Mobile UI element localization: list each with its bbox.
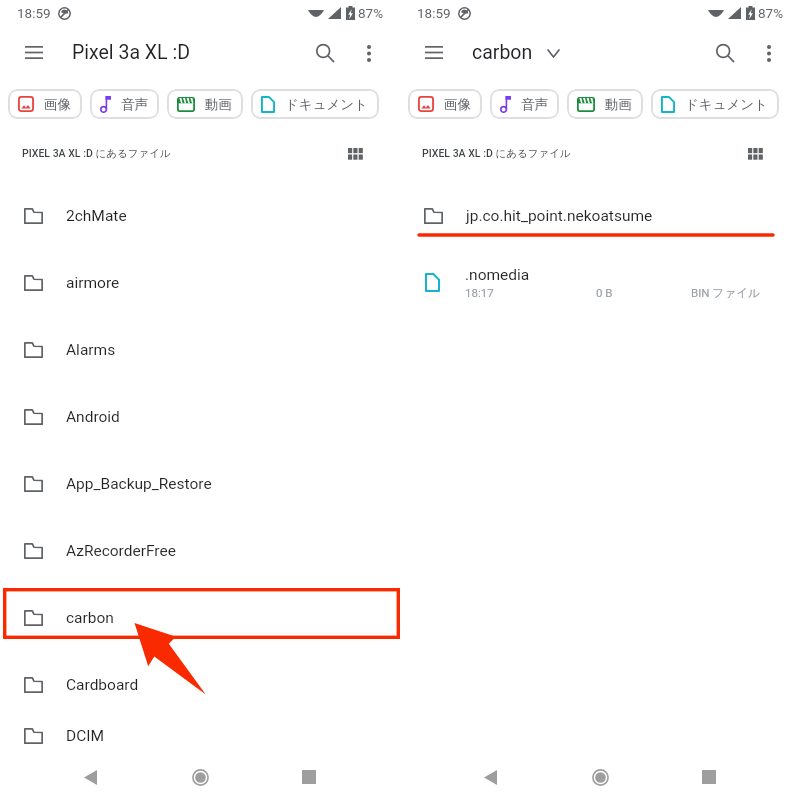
- staticText: 0 B: [596, 286, 613, 299]
- button[interactable]: Home: [176, 754, 224, 800]
- staticText: ドキュメント: [285, 96, 368, 113]
- staticText: 画像: [444, 96, 471, 113]
- button[interactable]: AzRecorderFree: [0, 517, 400, 584]
- button[interactable]: 2chMate: [0, 182, 400, 249]
- staticText: 18:59: [417, 5, 451, 21]
- button[interactable]: .nomedia: [400, 249, 800, 316]
- button[interactable]: More options: [747, 31, 791, 75]
- staticText: 音声: [121, 96, 148, 113]
- button[interactable]: Search: [303, 31, 347, 75]
- button[interactable]: 音声: [90, 89, 159, 119]
- button[interactable]: Open navigation drawer: [10, 29, 57, 76]
- staticText: Pixel 3a XL :D: [72, 41, 190, 64]
- staticText: BIN ファイル: [691, 286, 760, 300]
- staticText: jp.co.hit_point.nekoatsume: [466, 207, 653, 225]
- button[interactable]: 画像: [408, 89, 482, 119]
- staticText: PIXEL 3A XL :D にあるファイル: [22, 147, 171, 160]
- staticText: PIXEL 3A XL :D にあるファイル: [422, 147, 571, 160]
- button[interactable]: ドキュメント: [251, 89, 379, 119]
- button[interactable]: Alarms: [0, 316, 400, 383]
- button[interactable]: 動画: [567, 89, 643, 119]
- staticText: DCIM: [66, 727, 105, 745]
- staticText: App_Backup_Restore: [66, 475, 212, 493]
- button[interactable]: carbon: [0, 584, 400, 651]
- staticText: 動画: [205, 96, 232, 113]
- staticText: 動画: [605, 96, 632, 113]
- button[interactable]: Search: [703, 31, 747, 75]
- button[interactable]: airmore: [0, 249, 400, 316]
- button[interactable]: App_Backup_Restore: [0, 450, 400, 517]
- staticText: .nomedia: [465, 266, 530, 284]
- staticText: AzRecorderFree: [66, 542, 176, 560]
- button[interactable]: Back: [66, 754, 114, 800]
- staticText: carbon: [66, 609, 114, 627]
- staticText: airmore: [66, 274, 120, 292]
- staticText: 87%: [358, 5, 384, 21]
- button[interactable]: Home: [576, 754, 624, 800]
- button[interactable]: Cardboard: [0, 651, 400, 718]
- button[interactable]: More options: [347, 31, 391, 75]
- button[interactable]: ドキュメント: [651, 89, 779, 119]
- staticText: Alarms: [66, 341, 116, 359]
- button[interactable]: Recent apps: [685, 754, 733, 800]
- staticText: Android: [66, 408, 120, 426]
- button[interactable]: Switch to grid view: [343, 141, 369, 167]
- button[interactable]: DCIM: [0, 718, 400, 754]
- staticText: ドキュメント: [685, 96, 768, 113]
- button[interactable]: 音声: [490, 89, 559, 119]
- staticText: 87%: [758, 5, 784, 21]
- staticText: 18:59: [17, 5, 51, 21]
- button[interactable]: jp.co.hit_point.nekoatsume: [400, 182, 800, 249]
- button[interactable]: 画像: [8, 89, 82, 119]
- staticText: 2chMate: [66, 207, 127, 225]
- button[interactable]: Expand path: [539, 39, 567, 67]
- staticText: 画像: [44, 96, 71, 113]
- button[interactable]: Android: [0, 383, 400, 450]
- staticText: carbon: [472, 41, 533, 64]
- button[interactable]: Recent apps: [285, 754, 333, 800]
- button[interactable]: Open navigation drawer: [410, 29, 457, 76]
- staticText: Cardboard: [66, 676, 139, 694]
- staticText: 18:17: [465, 286, 494, 299]
- button[interactable]: Switch to grid view: [743, 141, 769, 167]
- button[interactable]: Back: [466, 754, 514, 800]
- staticText: 音声: [521, 96, 548, 113]
- button[interactable]: 動画: [167, 89, 243, 119]
